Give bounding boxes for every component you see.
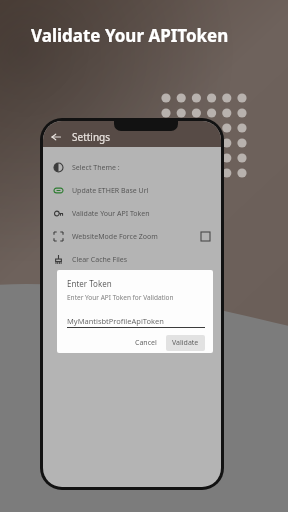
staticText: Validate	[172, 338, 199, 348]
button[interactable]: Select Theme :	[43, 156, 221, 179]
staticText: Settings	[72, 130, 111, 144]
staticText: Enter Your API Token for Validation	[67, 293, 174, 302]
staticText: Select Theme :	[72, 163, 120, 173]
staticText: Enter Token	[67, 278, 112, 289]
button[interactable]: Update ETHER Base Url	[43, 179, 221, 202]
staticText: Update ETHER Base Url	[72, 186, 149, 196]
staticText: Validate Your API Token	[72, 209, 150, 219]
button[interactable]: WebsiteMode Force Zoom	[43, 225, 221, 248]
button[interactable]: Cancel	[130, 335, 162, 351]
button[interactable]: MyMantisbtProfileApiToken	[67, 315, 205, 328]
button[interactable]: Validate	[166, 335, 205, 351]
staticText: Clear Cache Files	[72, 255, 128, 265]
staticText: MyMantisbtProfileApiToken	[67, 316, 164, 326]
button[interactable]: Clear Cache Files	[43, 248, 221, 271]
staticText: Validate Your APIToken	[31, 24, 229, 47]
staticText: Cancel	[135, 338, 157, 348]
button[interactable]: Back	[49, 130, 63, 144]
button[interactable]: Validate Your API Token	[43, 202, 221, 225]
button[interactable]: Force zoom toggle	[201, 232, 210, 241]
staticText: WebsiteMode Force Zoom	[72, 232, 158, 242]
